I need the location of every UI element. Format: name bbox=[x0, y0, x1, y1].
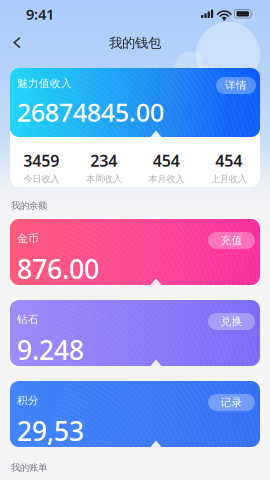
staticText: 本月收入 bbox=[148, 173, 184, 185]
staticText: 金币 bbox=[17, 232, 39, 245]
staticText: 钻石 bbox=[17, 313, 39, 326]
staticText: 9:41 bbox=[26, 4, 54, 24]
staticText: 9.248 bbox=[17, 332, 84, 367]
staticText: 今日收入 bbox=[23, 173, 59, 185]
staticText: 26874845.00 bbox=[17, 95, 164, 129]
staticText: 我的余额 bbox=[11, 200, 47, 211]
staticText: 454 bbox=[153, 150, 180, 171]
button[interactable]: 积分 bbox=[10, 381, 260, 447]
button[interactable]: 详情 bbox=[216, 77, 256, 94]
button[interactable]: 金币 bbox=[10, 219, 260, 285]
staticText: 29,53 bbox=[17, 413, 84, 448]
staticText: 本周收入 bbox=[86, 173, 122, 185]
staticText: 234 bbox=[90, 150, 117, 171]
staticText: 上月收入 bbox=[211, 173, 247, 185]
staticText: 3459 bbox=[23, 150, 59, 171]
button[interactable]: 记录 bbox=[208, 394, 255, 411]
button[interactable]: 充值 bbox=[208, 232, 255, 249]
button[interactable]: Back bbox=[2, 28, 32, 58]
staticText: 我的钱包 bbox=[109, 35, 161, 51]
staticText: 积分 bbox=[17, 394, 39, 407]
staticText: 魅力值收入 bbox=[17, 77, 72, 90]
staticText: 详情 bbox=[225, 79, 247, 92]
staticText: 兑换 bbox=[220, 315, 242, 328]
staticText: 我的账单 bbox=[11, 462, 47, 473]
staticText: 记录 bbox=[220, 396, 242, 409]
button[interactable]: 兑换 bbox=[208, 313, 255, 330]
staticText: 充值 bbox=[220, 234, 242, 247]
button[interactable]: 钻石 bbox=[10, 300, 260, 366]
staticText: 454 bbox=[215, 150, 242, 171]
staticText: 876.00 bbox=[17, 251, 99, 286]
